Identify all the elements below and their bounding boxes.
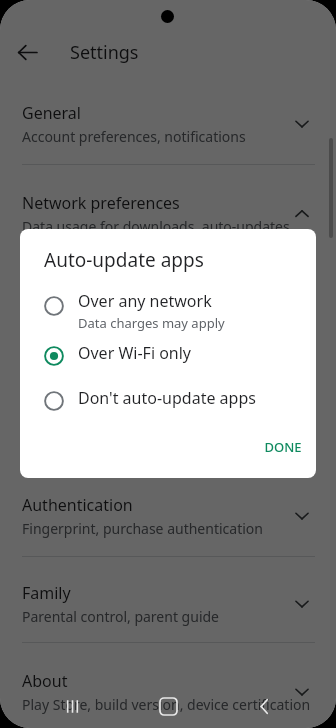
staticText: About <box>22 670 68 692</box>
staticText: Play Store, build version, device certif… <box>22 695 311 714</box>
staticText: Payment methods, subscriptions <box>22 397 238 416</box>
staticText: Auto-update apps <box>44 247 204 273</box>
staticText: DONE <box>264 438 302 456</box>
staticText: Data usage for downloads, auto-updates <box>22 217 290 236</box>
button[interactable]: DONE <box>258 430 308 464</box>
staticText: Authentication <box>22 494 133 516</box>
button[interactable]: Notifications <box>0 280 336 332</box>
staticText: Settings <box>70 40 139 65</box>
button[interactable]: Purchases <box>0 370 336 422</box>
staticText: Purchases <box>22 372 99 394</box>
staticText: Data charges may apply <box>78 314 225 332</box>
button[interactable]: Network preferences <box>0 190 336 242</box>
staticText: Don't auto-update apps <box>78 387 256 409</box>
staticText: Parental control, parent guide <box>22 607 219 626</box>
staticText: Notifications <box>22 282 118 304</box>
staticText: General <box>22 102 81 124</box>
button[interactable]: Home <box>144 684 192 728</box>
button[interactable]: About <box>0 668 336 720</box>
button[interactable]: Family <box>0 580 336 632</box>
staticText: Over any network <box>78 290 212 312</box>
staticText: Family <box>22 582 71 604</box>
button[interactable]: Authentication <box>0 492 336 544</box>
button[interactable]: Over Wi-Fi only <box>20 342 316 376</box>
button[interactable]: Don't auto-update apps <box>20 387 316 421</box>
staticText: Fingerprint, purchase authentication <box>22 519 263 538</box>
staticText: Network preferences <box>22 192 180 214</box>
staticText: Over Wi-Fi only <box>78 342 192 364</box>
button[interactable]: Back <box>240 684 288 728</box>
button[interactable]: Back <box>7 32 47 72</box>
staticText: Updates, offers, pre-registration <box>22 307 234 326</box>
staticText: Account preferences, notifications <box>22 127 246 146</box>
button[interactable]: Over any network <box>20 290 316 334</box>
button[interactable]: Recents <box>48 684 96 728</box>
button[interactable]: General <box>0 100 336 152</box>
